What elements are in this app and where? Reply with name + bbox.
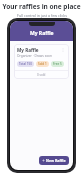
staticText: My Raffle	[30, 30, 54, 37]
staticText: New Raffle	[46, 158, 66, 163]
staticText: Your raffles in one place	[2, 2, 81, 11]
button[interactable]: New Raffle	[39, 156, 69, 165]
staticText: Total 150	[19, 62, 32, 66]
staticText: Full control in just a few clicks	[17, 13, 67, 18]
button[interactable]: Free 5	[51, 61, 64, 67]
staticText: My Raffle	[17, 47, 39, 53]
staticText: Sold 1	[38, 62, 47, 66]
button[interactable]: My Raffle	[14, 44, 69, 79]
staticText: Organizer · Draws soon	[17, 54, 53, 58]
button[interactable]: Sold 1	[36, 61, 49, 67]
staticText: Free 5	[53, 62, 62, 66]
staticText: 0 sold	[37, 73, 46, 77]
button[interactable]: Total 150	[17, 61, 34, 67]
